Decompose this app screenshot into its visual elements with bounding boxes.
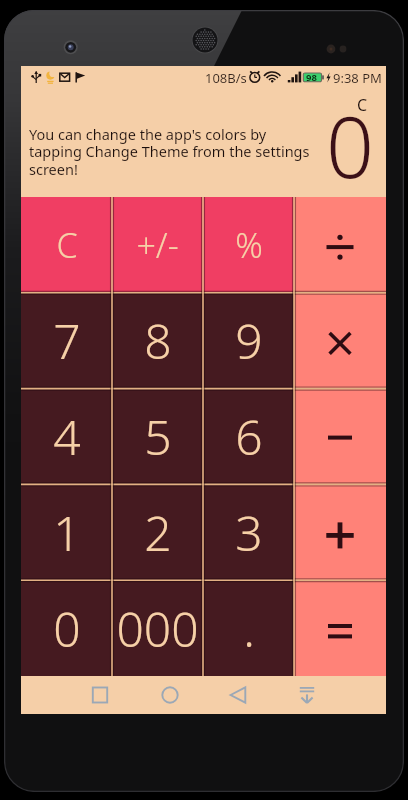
staticText: 98 xyxy=(306,71,317,84)
staticText: 0 xyxy=(53,596,81,661)
staticText: 4 xyxy=(53,404,81,469)
staticText: C xyxy=(56,222,78,268)
button[interactable]: 7 xyxy=(21,292,112,388)
staticText: 5 xyxy=(144,404,172,469)
staticText: 9 xyxy=(235,308,263,373)
staticText: +/- xyxy=(136,222,179,268)
button[interactable]: . xyxy=(203,580,294,676)
staticText: 0 xyxy=(326,88,374,202)
staticText: 1 xyxy=(53,500,81,565)
button[interactable]: Divide xyxy=(294,197,386,292)
button[interactable]: Multiply xyxy=(294,292,386,388)
staticText: 3 xyxy=(235,500,263,565)
staticText: 108B/s xyxy=(205,69,247,87)
staticText: 2 xyxy=(144,500,172,565)
button[interactable]: Recent apps xyxy=(81,676,119,714)
button[interactable]: 8 xyxy=(112,292,203,388)
button[interactable]: 0 xyxy=(21,580,112,676)
button[interactable]: 6 xyxy=(203,388,294,484)
button[interactable]: +/- xyxy=(112,197,203,292)
button[interactable]: C xyxy=(21,197,112,292)
button[interactable]: 000 xyxy=(112,580,203,676)
button[interactable]: 1 xyxy=(21,484,112,580)
button[interactable]: Equals xyxy=(294,580,386,676)
button[interactable]: Home xyxy=(151,676,189,714)
button[interactable]: Back xyxy=(219,676,257,714)
staticText: You can change the app's colors by tappi… xyxy=(29,124,312,179)
button[interactable]: 5 xyxy=(112,388,203,484)
button[interactable]: 2 xyxy=(112,484,203,580)
button[interactable]: Hide keyboard xyxy=(288,676,326,714)
button[interactable]: Subtract xyxy=(294,388,386,484)
staticText: 8 xyxy=(144,308,172,373)
staticText: 6 xyxy=(235,404,263,469)
staticText: 9:38 PM xyxy=(333,69,382,87)
staticText: C xyxy=(357,94,368,116)
staticText: 7 xyxy=(53,308,81,373)
button[interactable]: 9 xyxy=(203,292,294,388)
button[interactable]: % xyxy=(203,197,294,292)
button[interactable]: 3 xyxy=(203,484,294,580)
button[interactable]: 4 xyxy=(21,388,112,484)
staticText: . xyxy=(243,596,255,661)
staticText: 000 xyxy=(116,596,199,661)
staticText: % xyxy=(235,222,263,268)
button[interactable]: Add xyxy=(294,484,386,580)
